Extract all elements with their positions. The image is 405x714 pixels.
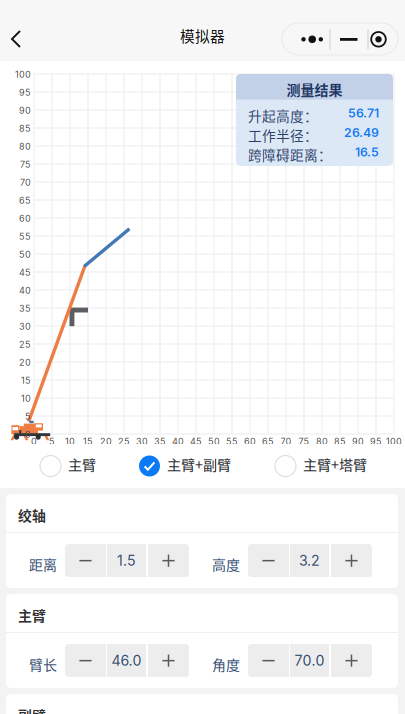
button[interactable]: Back	[0, 17, 34, 61]
staticText: 75	[20, 159, 31, 170]
staticText: 80	[19, 141, 31, 152]
staticText: 90	[352, 436, 364, 447]
staticText: 升起高度：	[248, 105, 318, 125]
staticText: 测量结果	[286, 79, 342, 99]
staticText: 85	[334, 436, 346, 447]
staticText: 10	[65, 436, 75, 447]
button[interactable]: 70.0	[290, 644, 329, 677]
staticText: 35	[154, 436, 166, 447]
staticText: 56.71	[348, 105, 379, 120]
staticText: 跨障碍距离：	[248, 144, 332, 164]
button[interactable]: Increase	[331, 644, 372, 677]
staticText: 95	[370, 436, 382, 447]
staticText: 75	[298, 436, 309, 447]
staticText: 80	[316, 436, 328, 447]
staticText: 25	[118, 436, 130, 447]
staticText: 绞轴	[18, 505, 46, 525]
staticText: 55	[226, 436, 238, 447]
staticText: 0	[31, 436, 37, 447]
staticText: 20	[19, 357, 31, 368]
staticText: 模拟器	[180, 25, 225, 46]
staticText: 40	[172, 436, 184, 447]
staticText: 46.0	[111, 652, 141, 669]
staticText: 26.49	[344, 125, 379, 140]
button[interactable]: Decrease	[65, 644, 106, 677]
staticText: 25	[19, 339, 31, 350]
button[interactable]: Increase	[331, 544, 372, 577]
staticText: 100	[386, 436, 402, 447]
button[interactable]: Decrease	[248, 644, 289, 677]
staticText: 20	[100, 436, 112, 447]
staticText: 距离	[29, 554, 57, 574]
button[interactable]: 46.0	[107, 644, 146, 677]
staticText: 30	[19, 321, 31, 332]
button[interactable]: 主臂+副臂	[139, 449, 259, 483]
staticText: 3.2	[299, 552, 320, 569]
staticText: 50	[19, 249, 31, 260]
button[interactable]: 3.2	[290, 544, 329, 577]
staticText: 55	[19, 231, 31, 242]
staticText: 臂长	[29, 654, 57, 674]
staticText: 工作半径：	[248, 125, 318, 145]
staticText: 5	[25, 411, 31, 422]
button[interactable]: More options	[282, 23, 398, 55]
staticText: 10	[21, 393, 31, 404]
staticText: 主臂	[18, 605, 46, 625]
staticText: 65	[262, 436, 274, 447]
staticText: 70	[20, 177, 31, 188]
staticText: 70	[280, 436, 291, 447]
staticText: 主臂+塔臂	[303, 454, 367, 474]
staticText: 15	[21, 375, 31, 386]
button[interactable]: 主臂	[40, 449, 140, 483]
staticText: 主臂	[68, 454, 96, 474]
staticText: 35	[19, 303, 31, 314]
staticText: 15	[83, 436, 93, 447]
button[interactable]: Increase	[148, 544, 189, 577]
staticText: 16.5	[355, 144, 379, 159]
staticText: 100	[15, 69, 31, 80]
staticText: 0	[25, 429, 31, 440]
staticText: 45	[190, 436, 202, 447]
staticText: 5	[49, 436, 55, 447]
button[interactable]: Increase	[148, 644, 189, 677]
staticText: 高度	[212, 554, 240, 574]
staticText: 60	[244, 436, 256, 447]
staticText: 90	[19, 105, 31, 116]
staticText: 95	[19, 87, 31, 98]
staticText: 50	[208, 436, 220, 447]
staticText: 65	[19, 195, 31, 206]
staticText: 1.5	[117, 552, 136, 569]
staticText: 45	[19, 267, 31, 278]
button[interactable]: 主臂+塔臂	[275, 449, 385, 483]
staticText: 角度	[212, 654, 240, 674]
button[interactable]: 1.5	[107, 544, 146, 577]
staticText: 主臂+副臂	[167, 454, 231, 474]
staticText: 85	[19, 123, 31, 134]
button[interactable]: Decrease	[248, 544, 289, 577]
staticText: 30	[136, 436, 148, 447]
staticText: 70.0	[294, 652, 324, 669]
staticText: 60	[19, 213, 31, 224]
button[interactable]: Decrease	[65, 544, 106, 577]
staticText: 副臂	[18, 705, 46, 714]
staticText: 40	[19, 285, 31, 296]
